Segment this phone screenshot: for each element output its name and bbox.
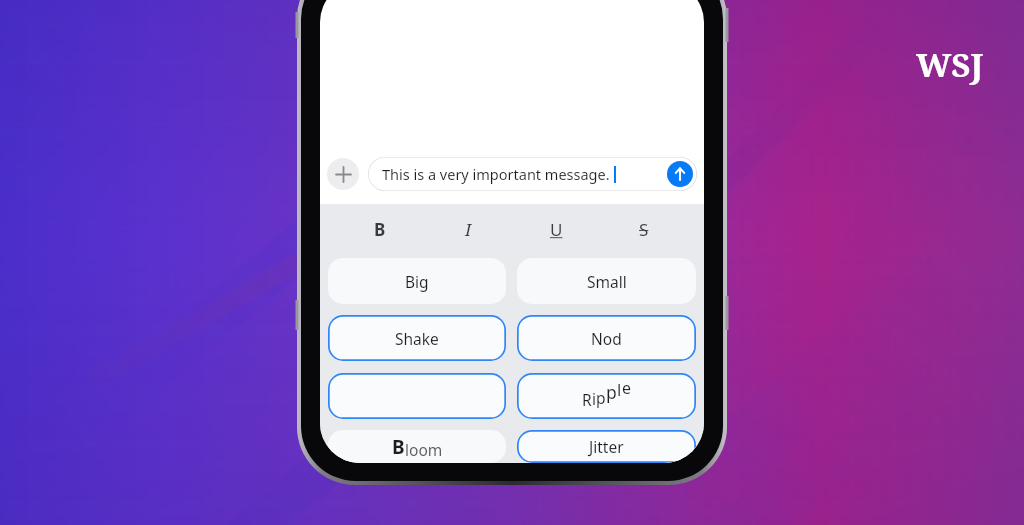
- button[interactable]: Send: [667, 161, 693, 187]
- button[interactable]: Nod: [517, 315, 696, 361]
- staticText: S: [639, 218, 649, 241]
- button[interactable]: S: [600, 212, 688, 246]
- button[interactable]: I: [424, 212, 512, 246]
- staticText: e: [622, 377, 632, 399]
- button[interactable]: B: [328, 430, 506, 463]
- button[interactable]: [328, 373, 506, 419]
- button[interactable]: Small: [517, 258, 696, 304]
- staticText: WSJ: [916, 42, 984, 87]
- staticText: loom: [405, 439, 443, 460]
- button[interactable]: U: [512, 212, 600, 246]
- staticText: This is a very important message.: [382, 164, 610, 184]
- button[interactable]: Shake: [328, 315, 506, 361]
- button[interactable]: WSJ logo: [916, 42, 984, 87]
- staticText: B: [374, 218, 386, 241]
- staticText: U: [550, 218, 563, 241]
- staticText: R: [582, 389, 592, 410]
- staticText: B: [392, 434, 405, 460]
- staticText: i: [592, 388, 596, 409]
- staticText: I: [465, 218, 472, 241]
- staticText: Nod: [591, 328, 622, 349]
- button[interactable]: Jitter: [517, 430, 696, 463]
- button[interactable]: B: [336, 212, 424, 246]
- staticText: Shake: [395, 328, 439, 349]
- button[interactable]: Add attachment: [327, 158, 359, 190]
- button[interactable]: R: [517, 373, 696, 419]
- staticText: p: [596, 387, 606, 408]
- staticText: Small: [587, 271, 627, 292]
- button[interactable]: This is a very important message.: [368, 157, 697, 191]
- staticText: l: [617, 378, 622, 400]
- staticText: Big: [405, 271, 429, 292]
- button[interactable]: Big: [328, 258, 506, 304]
- staticText: Jitter: [589, 436, 624, 457]
- staticText: p: [606, 380, 617, 404]
